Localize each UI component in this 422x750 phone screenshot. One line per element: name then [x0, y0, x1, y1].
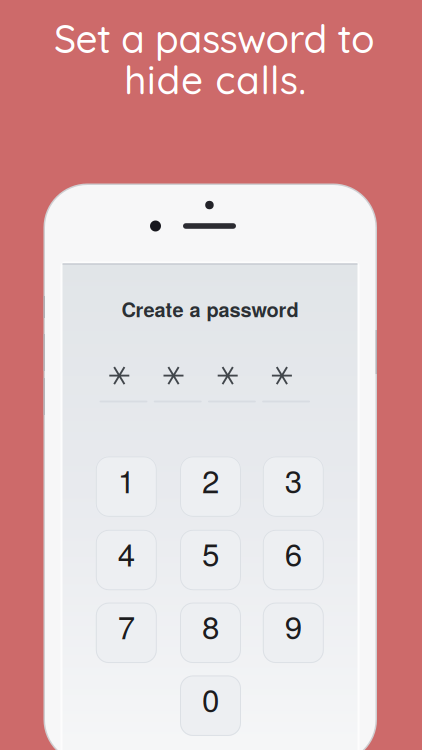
button[interactable]: 2 [180, 456, 241, 517]
staticText: 6 [285, 531, 302, 575]
staticText: Set a password to [54, 14, 375, 63]
staticText: 3 [285, 457, 302, 502]
button[interactable]: 4 [96, 530, 157, 590]
button[interactable]: 5 [180, 530, 241, 590]
staticText: 9 [285, 603, 302, 648]
button[interactable]: 9 [263, 602, 324, 663]
button[interactable]: 1 [96, 456, 157, 517]
staticText: 5 [202, 531, 219, 575]
staticText: 8 [202, 603, 219, 648]
staticText: 0 [202, 676, 219, 721]
staticText: hide calls. [124, 55, 306, 104]
staticText: Create a password [121, 295, 298, 323]
staticText: 4 [118, 531, 135, 575]
button[interactable]: 8 [180, 602, 241, 663]
staticText: 1 [118, 457, 135, 502]
button[interactable]: 0 [180, 675, 241, 736]
button[interactable]: 6 [263, 530, 324, 590]
staticText: 7 [118, 603, 135, 648]
button[interactable]: 7 [96, 602, 157, 663]
staticText: 2 [202, 457, 219, 502]
button[interactable]: 3 [263, 456, 324, 517]
